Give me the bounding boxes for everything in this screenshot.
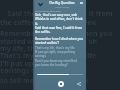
button[interactable]: More options <box>77 0 86 8</box>
staticText: That's my life, that's my life <box>35 46 75 50</box>
staticText: Remember how I died when you <box>0 29 120 39</box>
staticText: Said that was fine, I said it from <box>35 26 83 30</box>
staticText: Whisks in and often, don't think that <box>35 17 88 21</box>
staticText: started walkin'? <box>35 41 59 45</box>
staticText: Ooh, that's an easy one, ooh <box>35 13 78 17</box>
staticText: so tell me what you think <box>0 76 120 86</box>
staticText: my life, that's my life <box>0 44 120 54</box>
button[interactable]: Collapse <box>35 0 46 8</box>
staticText: you know the lending? <box>35 63 68 67</box>
staticText: Said the words you got it from <box>0 9 120 19</box>
staticText: started walkin' the walk, oh <box>0 37 120 47</box>
staticText: Remember how I died when you <box>35 37 84 41</box>
staticText: Don't you know my chief find <box>35 59 78 63</box>
staticText: That's my life, that's my life <box>0 51 120 61</box>
staticText: the coffee, don't even think <box>0 18 120 28</box>
staticText: Coffee Break <box>55 5 70 8</box>
button[interactable]: Pause <box>58 81 64 87</box>
button[interactable]: Share <box>76 81 82 87</box>
staticText: I'll put up with anything <box>0 59 120 69</box>
staticText: you're presented with <box>35 9 62 12</box>
staticText: earrings on the side, oh <box>0 66 120 76</box>
staticText: If you go right, stop putting <box>35 50 76 54</box>
staticText: it. <box>35 22 39 26</box>
staticText: The Big Question <box>49 1 75 5</box>
staticText: the coffin. <box>35 30 51 34</box>
staticText: savings <box>35 54 46 58</box>
